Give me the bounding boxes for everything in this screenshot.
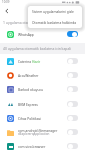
button[interactable]: AccuWeather bbox=[0, 68, 85, 82]
button[interactable]: Barkod okuyucu bbox=[0, 82, 85, 96]
staticText: Otomatik baslatma hakkinda bbox=[32, 21, 77, 25]
button[interactable]: Geri bbox=[1, 5, 12, 16]
staticText: com.android.filemanager bbox=[18, 128, 58, 132]
staticText: Sistem uygulamalarini gizle bbox=[32, 10, 74, 14]
button[interactable]: Cihaz Politikasi bbox=[0, 111, 85, 125]
button[interactable]: Otomatik baslatmayi ac/kapat bbox=[67, 31, 78, 37]
staticText: Cihaz Politikasi bbox=[18, 116, 41, 120]
button[interactable]: Caterina Hazir bbox=[0, 54, 85, 68]
staticText: Caterina Hazir bbox=[18, 59, 40, 63]
button[interactable]: Otomatik baslatmayi ac/kapat bbox=[67, 143, 78, 149]
staticText: com.vivo.browser bbox=[18, 144, 46, 148]
staticText: dEaplorerqApplication bbox=[18, 132, 50, 136]
button[interactable]: Otomatik baslatmayi ac/kapat bbox=[67, 86, 78, 92]
staticText: 1 uygulama otomatik olarak baslatilabili… bbox=[3, 20, 68, 25]
button[interactable]: com.vivo.browser bbox=[0, 139, 85, 150]
button[interactable]: Otomatik baslatmayi ac/kapat bbox=[67, 115, 78, 121]
staticText: BKM Express bbox=[18, 102, 38, 106]
staticText: AccuWeather bbox=[18, 73, 39, 77]
button[interactable]: Otomatik baslatmayi ac/kapat bbox=[67, 129, 78, 135]
button[interactable]: WhatsApp bbox=[0, 27, 85, 41]
button[interactable]: BKM Express bbox=[0, 97, 85, 111]
button[interactable]: Otomatik baslatmayi ac/kapat bbox=[67, 101, 78, 107]
button[interactable]: com.android.filemanager bbox=[0, 125, 85, 139]
staticText: 10:09 bbox=[2, 0, 10, 4]
button[interactable]: Otomatik baslatmayi ac/kapat bbox=[67, 58, 78, 64]
button[interactable]: Sistem uygulamalarini gizle bbox=[28, 6, 82, 17]
button[interactable]: Otomatik baslatmayi ac/kapat bbox=[67, 72, 78, 78]
staticText: WhatsApp bbox=[18, 32, 67, 36]
button[interactable]: Otomatik baslatma hakkinda bbox=[28, 17, 82, 28]
staticText: Barkod okuyucu bbox=[18, 87, 44, 91]
staticText: 40 uygulama otomatik baslatma icin kapal… bbox=[3, 46, 72, 51]
